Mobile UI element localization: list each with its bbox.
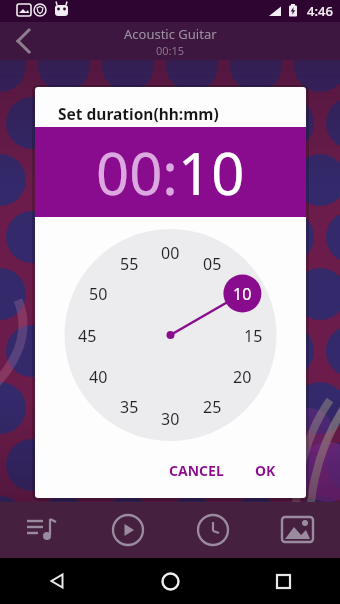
staticText: Set duration(hh:mm) (58, 103, 219, 124)
button[interactable]: 30 (153, 408, 187, 428)
staticText: 00:15 (156, 43, 185, 58)
button[interactable] (0, 502, 85, 558)
staticText: 45 (78, 325, 97, 345)
staticText: 20 (233, 366, 252, 386)
staticText: 50 (89, 283, 108, 303)
staticText: 05 (203, 253, 222, 273)
button[interactable] (170, 502, 255, 558)
button[interactable]: 50 (81, 283, 115, 303)
button[interactable] (114, 558, 227, 604)
button[interactable] (227, 558, 340, 604)
button[interactable]: 55 (112, 253, 146, 273)
button[interactable]: 10 (225, 283, 259, 303)
staticText: 10 (178, 133, 245, 212)
button[interactable] (85, 502, 170, 558)
button[interactable] (0, 558, 114, 604)
button[interactable] (255, 502, 340, 558)
button[interactable]: 05 (195, 253, 229, 273)
staticText: 15 (244, 325, 263, 345)
staticText: 35 (120, 396, 139, 416)
button[interactable]: 45 (70, 325, 104, 345)
button[interactable]: 15 (236, 325, 270, 345)
button[interactable]: 00 (153, 242, 187, 262)
staticText: 00: (96, 133, 178, 212)
staticText: 10 (233, 283, 252, 303)
staticText: 40 (89, 366, 108, 386)
staticText: 55 (120, 253, 139, 273)
staticText: 25 (203, 396, 222, 416)
staticText: 4:46 (307, 2, 333, 20)
staticText: CANCEL (169, 461, 224, 480)
staticText: OK (255, 461, 276, 480)
staticText: 30 (161, 408, 180, 428)
staticText: Acoustic Guitar (124, 25, 217, 43)
button[interactable]: 40 (81, 366, 115, 386)
button[interactable]: CANCEL (169, 450, 224, 490)
button[interactable]: 25 (195, 396, 229, 416)
staticText: 00 (161, 242, 180, 262)
button[interactable]: 20 (225, 366, 259, 386)
button[interactable]: 35 (112, 396, 146, 416)
button[interactable]: OK (255, 450, 276, 490)
button[interactable] (0, 22, 48, 60)
